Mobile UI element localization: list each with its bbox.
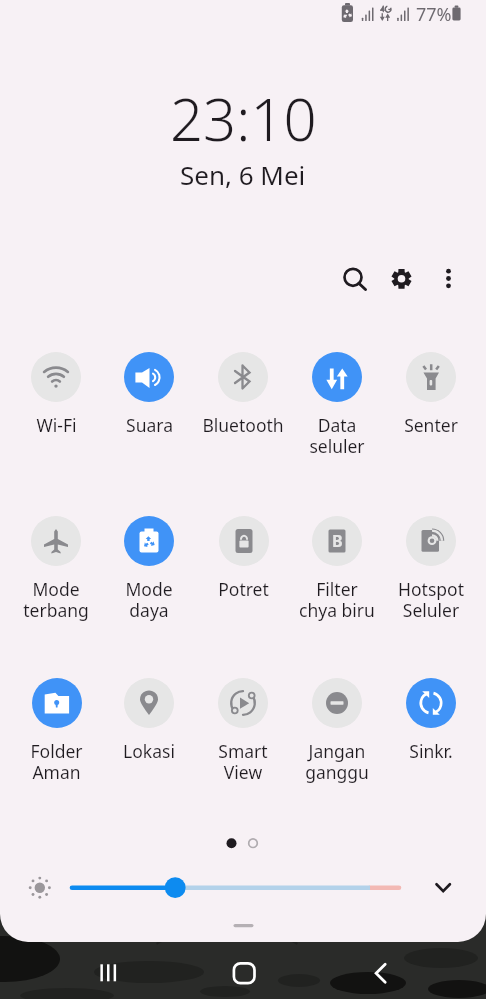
staticText: Lokasi <box>123 739 175 763</box>
staticText: Potret <box>218 577 269 601</box>
button[interactable]: Search <box>333 257 373 297</box>
staticText: Mode daya <box>125 577 173 623</box>
button[interactable]: B <box>290 513 384 637</box>
button[interactable]: Settings <box>381 257 421 297</box>
button[interactable]: Lokasi <box>102 675 196 799</box>
button[interactable]: Potret <box>196 513 290 637</box>
staticText: 77% <box>416 2 452 27</box>
button[interactable]: Suara <box>102 349 196 473</box>
staticText: Smart View <box>218 739 268 785</box>
staticText: Folder Aman <box>30 739 83 785</box>
button[interactable]: Hotspot Seluler <box>384 513 478 637</box>
button[interactable]: Mode daya <box>102 513 196 637</box>
button[interactable]: Data seluler <box>290 349 384 473</box>
button[interactable]: Jangan ganggu <box>290 675 384 799</box>
staticText: Hotspot Seluler <box>398 577 464 623</box>
button[interactable]: Back <box>351 947 409 999</box>
button[interactable]: Wi-Fi <box>9 349 103 473</box>
button[interactable]: More options <box>429 257 469 297</box>
staticText: Mode terbang <box>23 577 89 623</box>
button[interactable]: Smart View <box>196 675 290 799</box>
staticText: 23:10 <box>170 79 317 158</box>
button[interactable]: Bluetooth <box>196 349 290 473</box>
button[interactable]: Folder Aman <box>9 675 103 799</box>
staticText: Wi-Fi <box>36 413 77 437</box>
staticText: Data seluler <box>309 413 365 459</box>
button[interactable]: Sinkr. <box>384 675 478 799</box>
button[interactable]: Recent apps <box>80 947 138 999</box>
staticText: Bluetooth <box>202 413 284 437</box>
button[interactable]: Home <box>215 947 273 999</box>
staticText: Jangan ganggu <box>305 739 369 785</box>
staticText: Suara <box>126 413 173 437</box>
button[interactable]: Senter <box>384 349 478 473</box>
staticText: Filter chya biru <box>299 577 375 623</box>
staticText: Senter <box>404 413 458 437</box>
staticText: B <box>332 530 343 552</box>
staticText: Sen, 6 Mei <box>180 157 306 192</box>
staticText: Sinkr. <box>409 739 453 763</box>
button[interactable]: Mode terbang <box>9 513 103 637</box>
